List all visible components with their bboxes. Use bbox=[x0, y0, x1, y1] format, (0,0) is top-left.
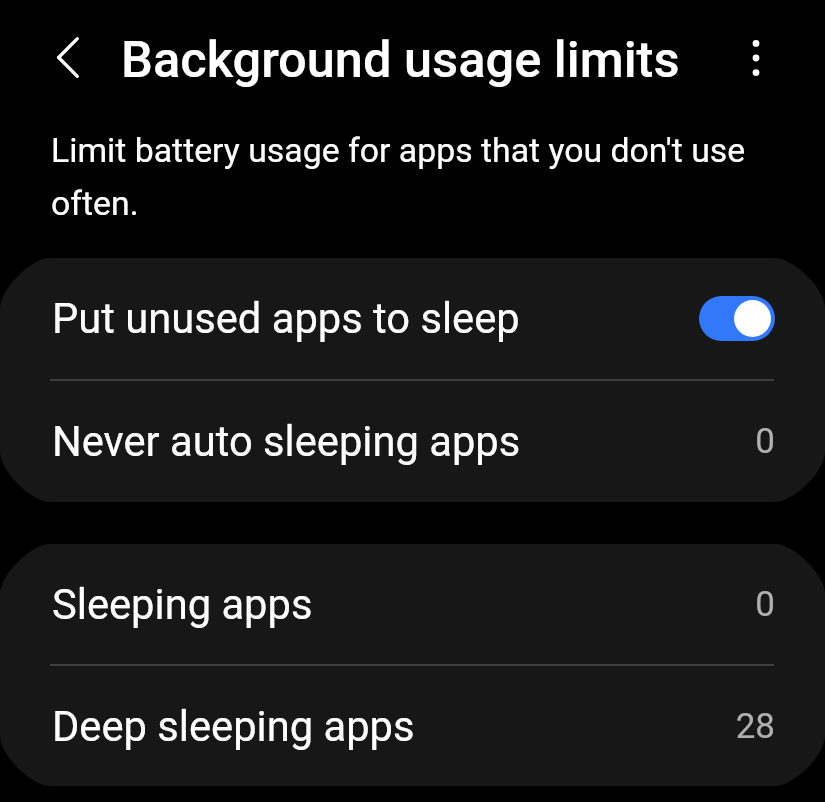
staticText: Sleeping apps bbox=[52, 580, 755, 629]
staticText: Never auto sleeping apps bbox=[52, 417, 755, 466]
button[interactable]: Deep sleeping apps bbox=[0, 666, 825, 786]
staticText: Deep sleeping apps bbox=[52, 702, 735, 751]
button[interactable]: More options bbox=[720, 22, 791, 93]
staticText: Limit battery usage for apps that you do… bbox=[51, 131, 825, 223]
staticText: 0 bbox=[755, 584, 775, 625]
button[interactable]: Sleeping apps bbox=[0, 544, 825, 664]
button[interactable]: Navigate up bbox=[32, 21, 104, 93]
staticText: 28 bbox=[735, 706, 775, 747]
staticText: Put unused apps to sleep bbox=[52, 294, 699, 343]
button[interactable]: Put unused apps to sleep bbox=[0, 258, 825, 379]
button[interactable]: Put unused apps to sleep bbox=[699, 296, 775, 341]
button[interactable]: Never auto sleeping apps bbox=[0, 381, 825, 502]
staticText: 0 bbox=[755, 421, 775, 462]
staticText: Background usage limits bbox=[121, 30, 680, 89]
